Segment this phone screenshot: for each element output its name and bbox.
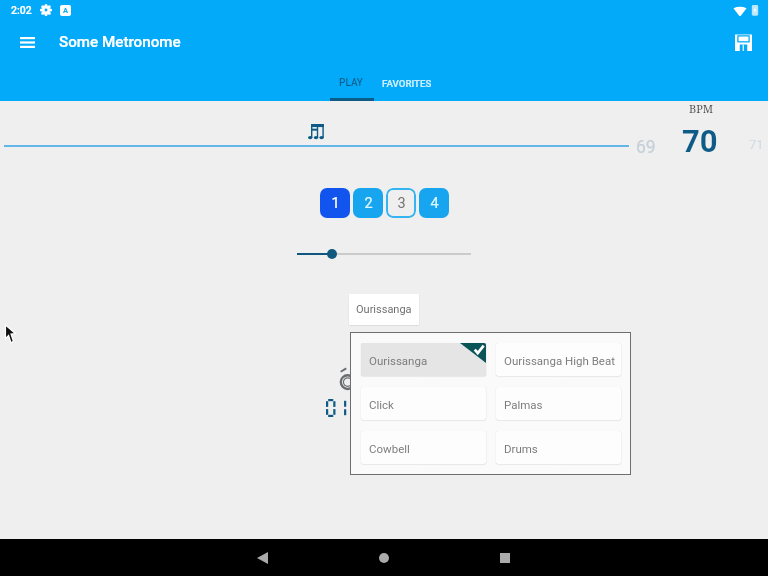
staticText: Palmas [504,398,543,411]
button[interactable]: PLAY [326,65,376,101]
button[interactable]: Ourissanga [349,294,419,325]
button[interactable]: FAVORITES [367,65,447,101]
button[interactable]: Save [727,26,759,58]
staticText: Ourissanga [356,303,412,316]
button[interactable]: Cowbell [361,431,486,464]
staticText: 69 [636,137,656,158]
staticText: 70 [682,123,718,159]
staticText: Cowbell [369,442,410,455]
staticText: 2:02 [11,4,32,16]
staticText: A [63,6,69,15]
button[interactable]: Click [361,387,486,420]
staticText: PLAY [339,77,363,89]
button[interactable]: 2 [353,188,383,218]
staticText: FAVORITES [382,78,432,89]
button[interactable]: Open navigation drawer [12,27,42,57]
button[interactable]: Ourissanga High Beat [496,343,621,376]
staticText: BPM [689,101,714,116]
staticText: Ourissanga [369,354,428,367]
staticText: 3 [397,195,406,212]
button[interactable]: 3 [386,188,416,218]
button[interactable]: 1 [320,188,350,218]
button[interactable]: 4 [419,188,449,218]
button[interactable]: Back [249,545,275,571]
staticText: 1 [331,195,340,212]
button[interactable]: Drums [496,431,621,464]
staticText: Some Metronome [59,33,181,51]
staticText: Ourissanga High Beat [504,354,615,367]
staticText: Click [369,398,394,411]
staticText: 2 [364,195,373,212]
button[interactable]: Tempo slider [327,249,337,259]
button[interactable]: Home [371,545,397,571]
button[interactable]: Recent apps [492,545,518,571]
staticText: Drums [504,442,538,455]
staticText: 71 [749,137,764,152]
button[interactable]: Palmas [496,387,621,420]
staticText: 4 [430,195,439,212]
button[interactable]: Ourissanga [361,343,486,376]
